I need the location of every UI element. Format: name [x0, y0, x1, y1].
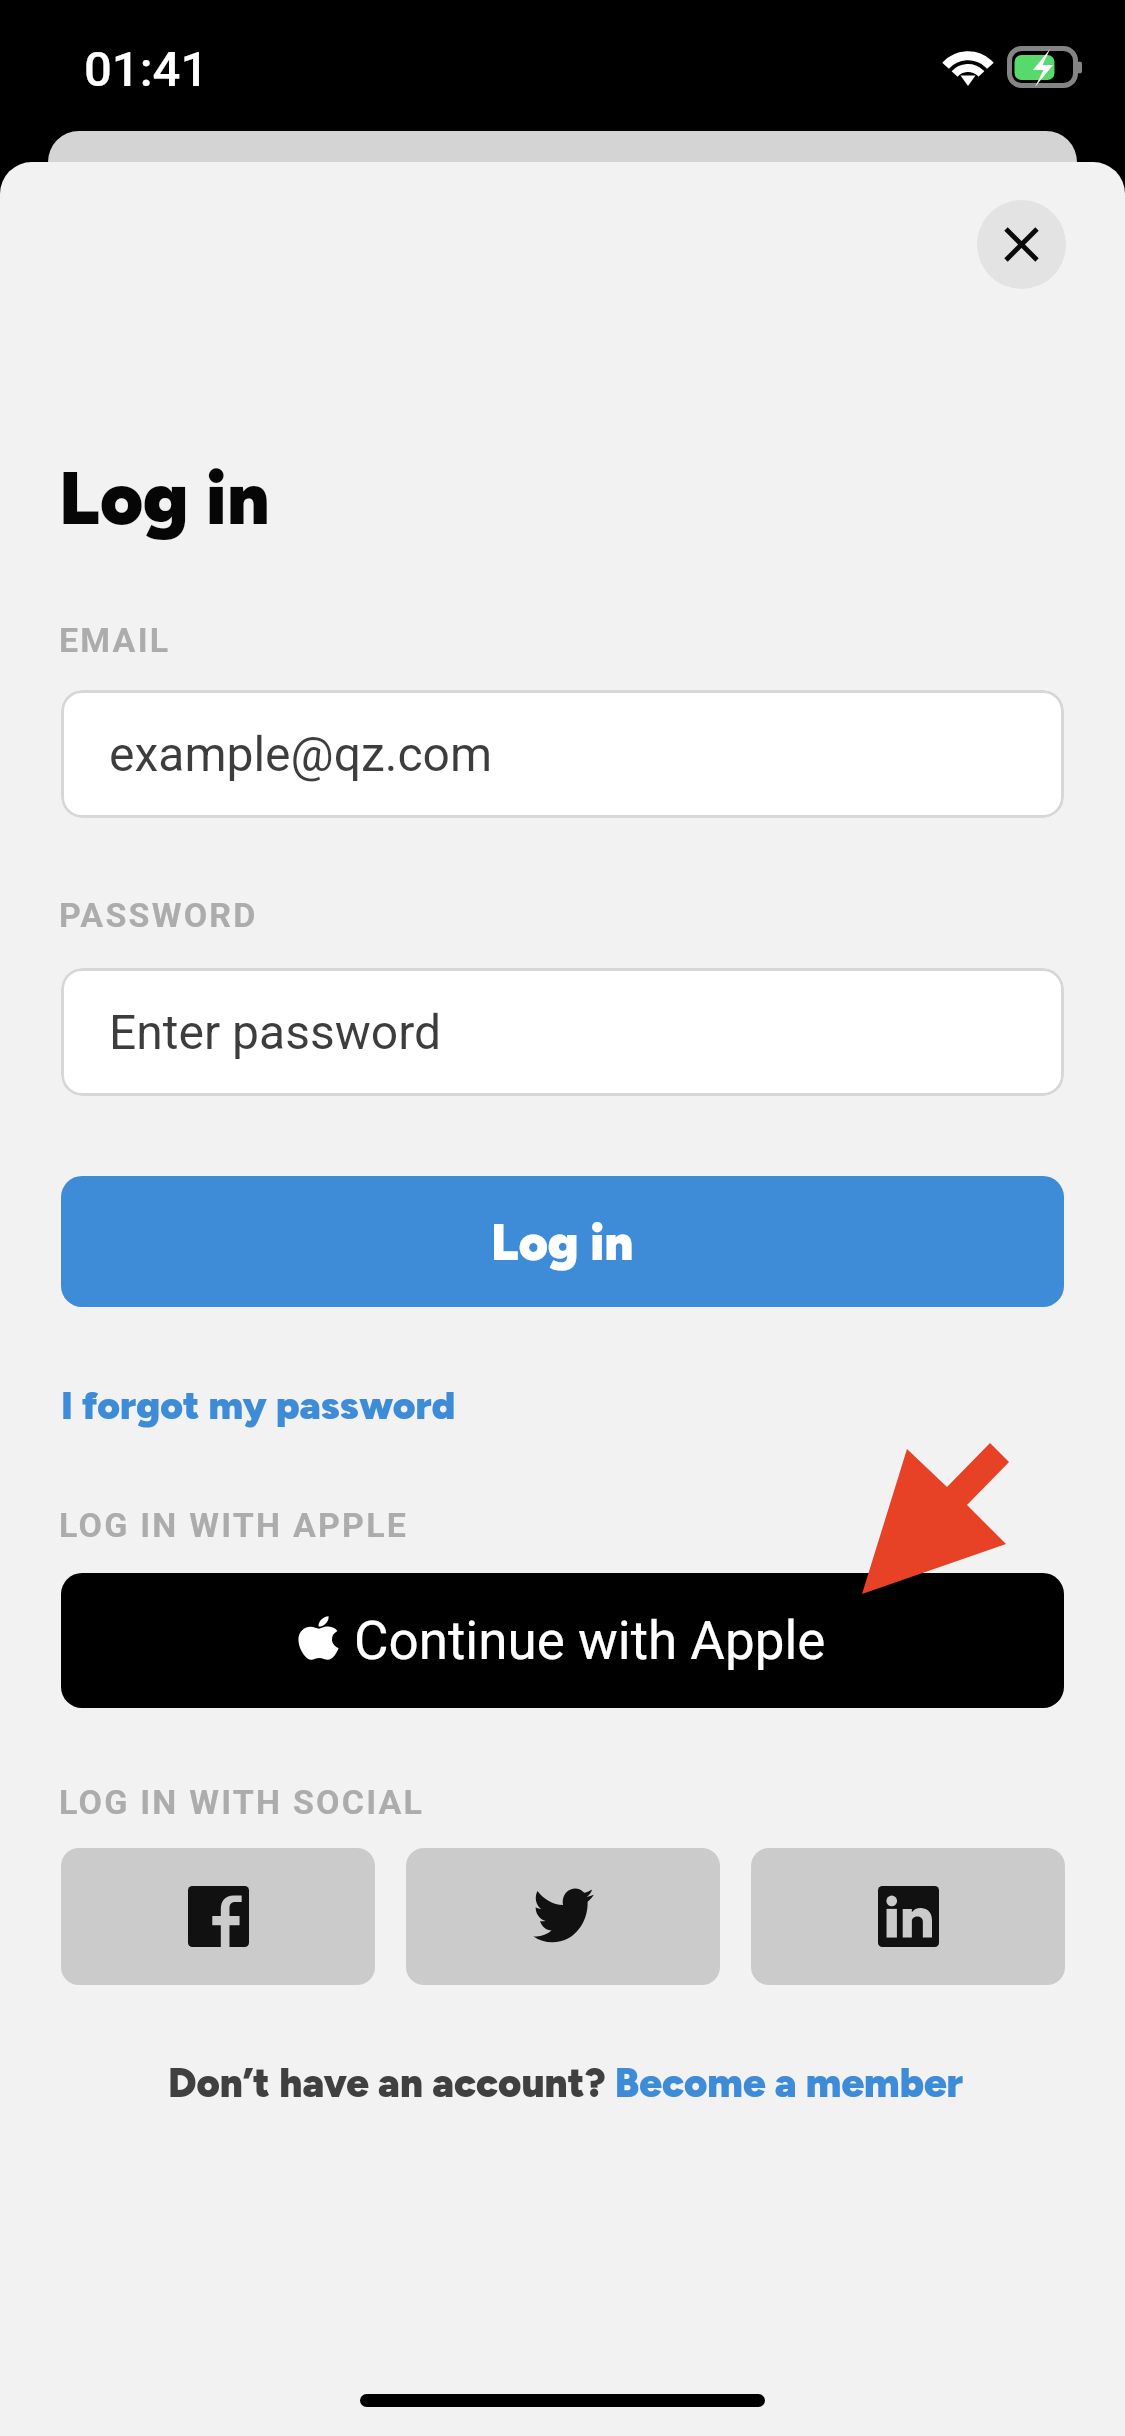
button[interactable]: Log in with Facebook: [61, 1848, 375, 1985]
staticText: I forgot my password: [61, 1382, 456, 1429]
staticText: EMAIL: [59, 620, 171, 660]
staticText: Enter password: [109, 1004, 442, 1060]
staticText: example@qz.com: [109, 726, 492, 782]
button[interactable]: Log in with LinkedIn: [751, 1848, 1065, 1985]
button[interactable]: Close: [977, 200, 1066, 289]
button[interactable]: Log in with Twitter: [406, 1848, 720, 1985]
staticText: PASSWORD: [59, 895, 258, 935]
button[interactable]: I forgot my password: [61, 1382, 456, 1429]
button[interactable]: example@qz.com: [61, 690, 1064, 818]
staticText: LOG IN WITH SOCIAL: [59, 1782, 425, 1822]
staticText: 01:41: [84, 41, 209, 98]
button[interactable]: Enter password: [61, 968, 1064, 1096]
button[interactable]: Continue with Apple: [61, 1573, 1064, 1708]
staticText: Log in: [59, 454, 270, 543]
button[interactable]: Log in: [61, 1176, 1064, 1307]
button[interactable]: Don’t have an account? Become a member: [168, 2059, 964, 2107]
staticText: Log in: [491, 1212, 634, 1272]
staticText: Don’t have an account? Become a member: [168, 2059, 964, 2107]
staticText: Continue with Apple: [354, 1610, 826, 1672]
staticText: LOG IN WITH APPLE: [59, 1505, 409, 1545]
